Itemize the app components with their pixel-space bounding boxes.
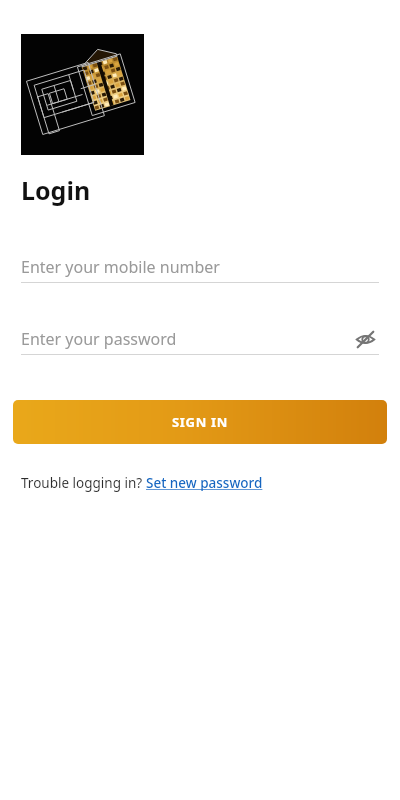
button[interactable]: SIGN IN	[13, 400, 387, 444]
button[interactable]: Set new password	[146, 474, 263, 492]
staticText: SIGN IN	[172, 413, 229, 431]
staticText: Login	[21, 173, 91, 207]
staticText: Enter your mobile number	[21, 256, 220, 278]
button[interactable]: Show password	[351, 325, 379, 353]
staticText: Trouble logging in?	[21, 474, 146, 492]
button[interactable]: Enter your mobile number	[21, 251, 379, 283]
button[interactable]: Enter your password	[21, 328, 177, 350]
